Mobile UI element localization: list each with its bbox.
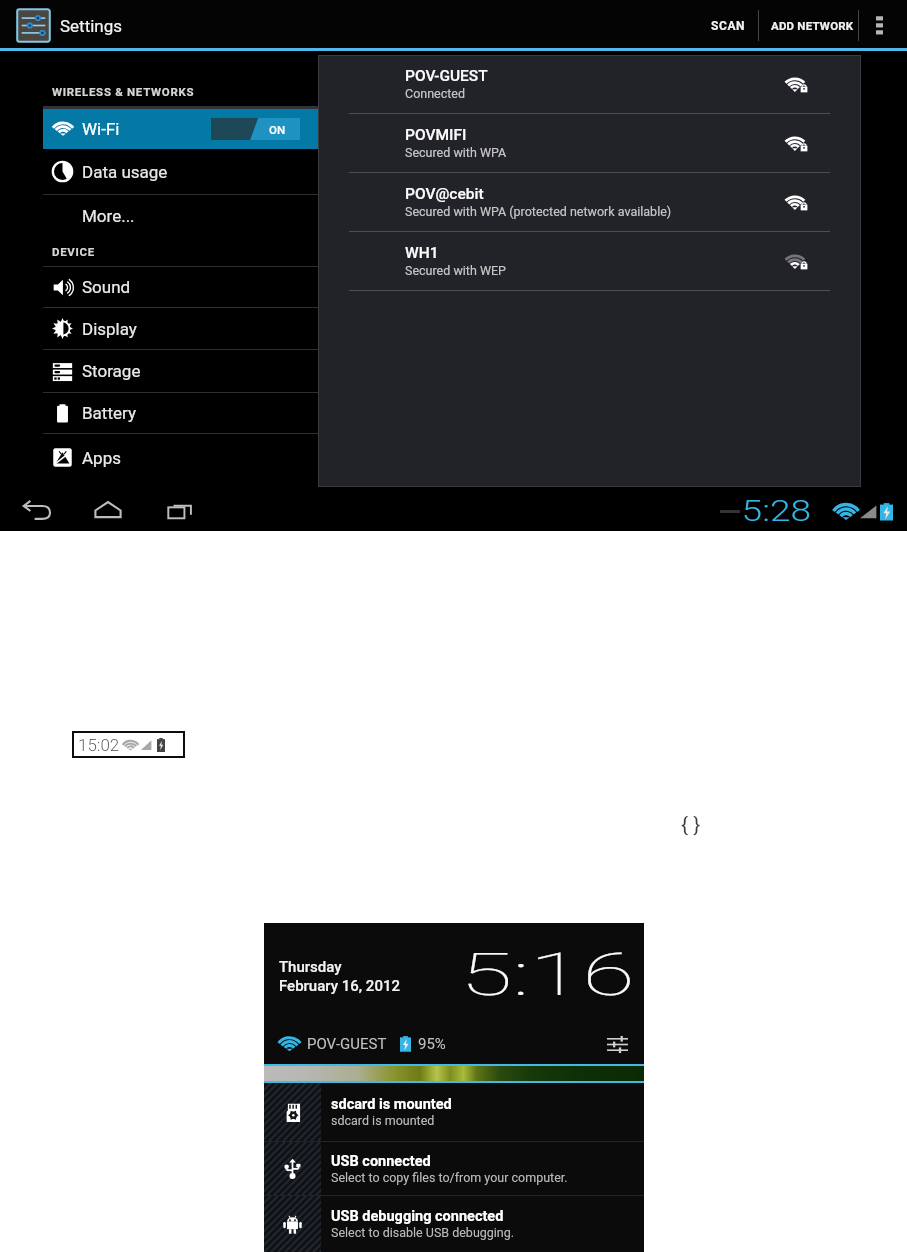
button[interactable]: SCAN [682,0,758,51]
staticText: DEVICE [52,245,96,258]
staticText: SCAN [711,19,746,33]
button[interactable]: Display [43,308,318,349]
button[interactable]: POV-GUEST [405,55,830,113]
staticText: More... [82,206,135,226]
staticText: ADD NETWORK [771,19,854,32]
staticText: ON [269,123,286,136]
button[interactable]: WH1 [405,232,830,290]
button[interactable]: Apps [43,434,318,481]
staticText: 95% [418,1035,446,1053]
staticText: Secured with WPA [405,145,507,160]
staticText: sdcard is mounted [331,1096,452,1113]
staticText: February 16, 2012 [279,977,400,995]
staticText: Battery [82,403,136,423]
button[interactable]: Data usage [43,149,318,194]
staticText: Display [82,319,137,339]
staticText: Secured with WPA (protected network avai… [405,204,672,219]
button[interactable]: Battery [43,393,318,433]
button[interactable]: Quick settings [604,1031,630,1057]
staticText: Apps [82,448,121,468]
button[interactable]: USB debugging connected [264,1196,644,1252]
staticText: Settings [60,16,123,36]
staticText: USB debugging connected [331,1208,504,1225]
staticText: Sound [82,277,131,297]
button[interactable]: Storage [43,350,318,392]
button[interactable]: POVMIFI [405,114,830,172]
button[interactable]: ON [211,118,300,140]
button[interactable]: Back [0,491,72,531]
button[interactable]: Settings [0,7,131,44]
staticText: Wi-Fi [82,119,120,139]
button[interactable]: POV@cebit [405,173,830,231]
staticText: 5:16 [460,939,636,1009]
button[interactable]: ADD NETWORK [759,0,858,51]
staticText: POV-GUEST [405,67,488,85]
staticText: Secured with WEP [405,263,506,278]
staticText: POV@cebit [405,185,484,203]
button[interactable]: More... [43,195,318,236]
button[interactable]: sdcard is mounted [264,1083,644,1141]
staticText: Thursday [279,958,342,976]
staticText: Connected [405,86,466,101]
staticText: sdcard is mounted [331,1113,435,1128]
button[interactable]: Wi-Fi [43,109,318,149]
button[interactable]: USB connected [264,1142,644,1195]
staticText: USB connected [331,1153,431,1170]
staticText: WH1 [405,244,439,262]
staticText: 5:28 [742,494,812,528]
staticText: POV-GUEST [307,1035,387,1053]
staticText: Storage [82,361,141,381]
button[interactable]: Home [72,491,144,531]
button[interactable]: Recents [144,491,216,531]
staticText: { } [681,813,701,838]
staticText: POVMIFI [405,126,467,144]
staticText: 15:02 [78,735,120,755]
staticText: Data usage [82,162,168,182]
staticText: Select to disable USB debugging. [331,1225,515,1240]
button[interactable]: More options [859,0,907,51]
staticText: Select to copy files to/from your comput… [331,1170,568,1185]
button[interactable]: Sound [43,267,318,307]
staticText: WIRELESS & NETWORKS [52,85,195,98]
